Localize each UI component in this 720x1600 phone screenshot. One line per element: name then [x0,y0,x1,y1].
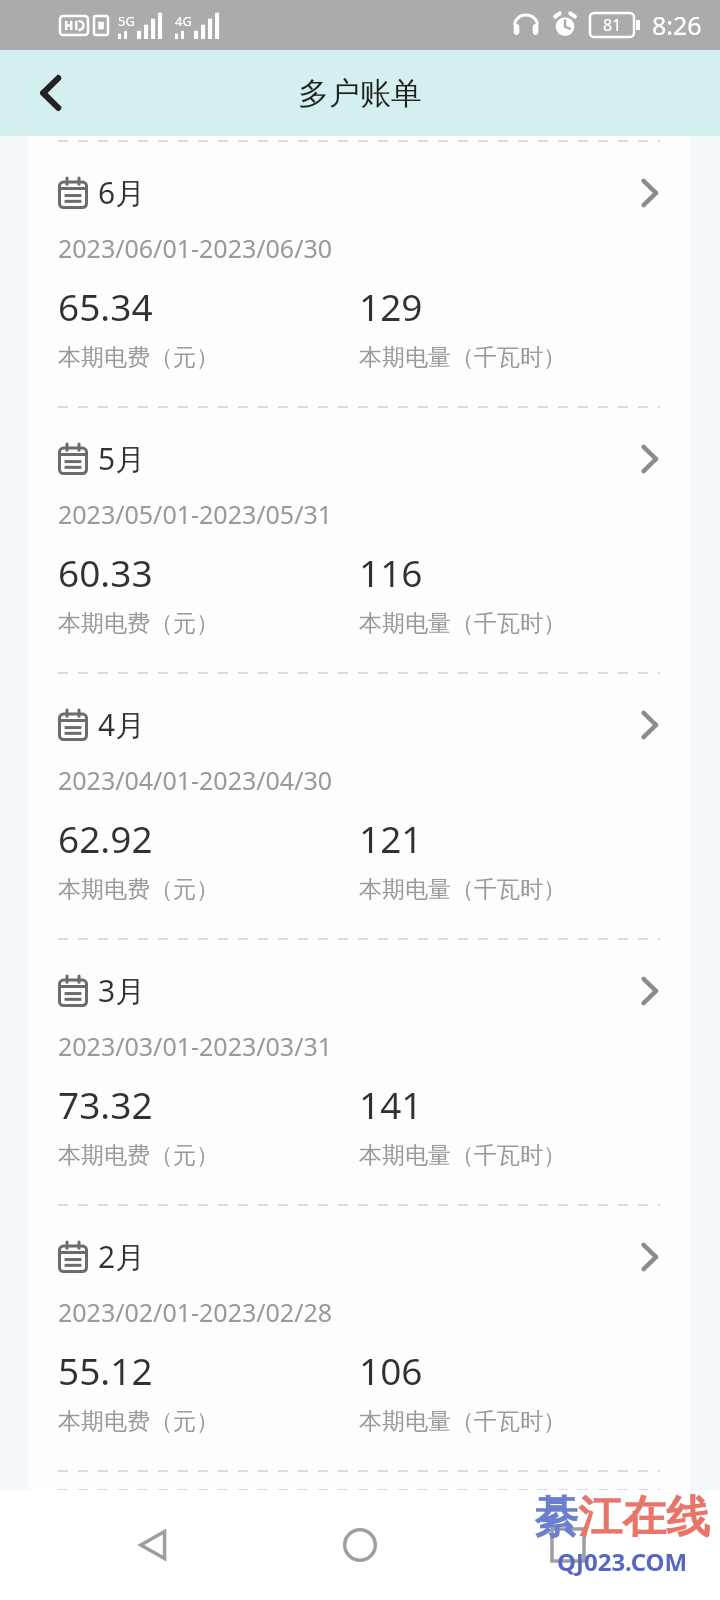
button[interactable]: Back [98,1490,208,1600]
staticText: 2023/04/01-2023/04/30 [58,763,333,797]
staticText: 本期电费（元） [58,343,219,372]
staticText: 4月 [98,704,146,745]
staticText: 141 [359,1079,423,1129]
staticText: 本期电费（元） [58,609,219,638]
staticText: 6月 [98,172,146,213]
staticText: 本期电量（千瓦时） [359,343,566,372]
button[interactable]: 3月 [28,944,690,1200]
staticText: 多户账单 [298,74,422,113]
staticText: 本期电量（千瓦时） [359,1141,566,1170]
staticText: 本期电费（元） [58,1141,219,1170]
staticText: QJ023.COM [557,1545,688,1578]
staticText: 62.92 [58,813,153,863]
button[interactable]: 4月 [28,678,690,934]
staticText: 121 [359,813,423,863]
staticText: 106 [359,1345,423,1395]
staticText: 本期电费（元） [58,1407,219,1436]
staticText: 本期电费（元） [58,875,219,904]
staticText: 綦 [534,1490,578,1545]
staticText: 5G [118,12,135,30]
button[interactable]: 6月 [28,146,690,402]
staticText: 2023/05/01-2023/05/31 [58,497,333,531]
staticText: 129 [359,281,423,331]
staticText: 65.34 [58,281,153,331]
staticText: 本期电量（千瓦时） [359,609,566,638]
staticText: 60.33 [58,547,153,597]
staticText: 116 [359,547,423,597]
button[interactable]: Home [305,1490,415,1600]
button[interactable]: 1月 [28,1476,690,1490]
staticText: 本期电量（千瓦时） [359,1407,566,1436]
staticText: 2023/06/01-2023/06/30 [58,231,333,265]
staticText: 73.32 [58,1079,153,1129]
staticText: 2月 [98,1236,146,1277]
staticText: 8:26 [652,8,702,42]
staticText: 5月 [98,438,146,479]
button[interactable]: Back [20,62,82,124]
staticText: 3月 [98,970,146,1011]
button[interactable]: Recents [513,1490,623,1600]
staticText: 2023/02/01-2023/02/28 [58,1295,333,1329]
staticText: 55.12 [58,1345,153,1395]
staticText: 2023/03/01-2023/03/31 [58,1029,333,1063]
button[interactable]: 5月 [28,412,690,668]
staticText: 81 [603,14,622,36]
staticText: 本期电量（千瓦时） [359,875,566,904]
staticText: 4G [175,12,192,30]
staticText: 江在线 [578,1490,710,1545]
button[interactable]: 2月 [28,1210,690,1466]
